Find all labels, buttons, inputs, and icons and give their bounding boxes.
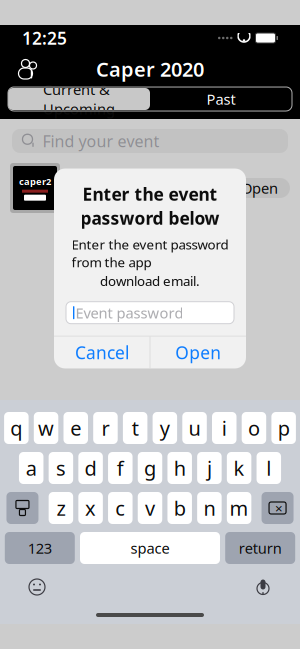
staticText: r	[101, 415, 109, 441]
button[interactable]: l	[256, 452, 281, 484]
button[interactable]: Open	[150, 336, 246, 368]
staticText: n	[203, 495, 215, 521]
button[interactable]: y	[153, 412, 177, 444]
button[interactable]: k	[227, 452, 251, 484]
staticText: download email.	[100, 272, 200, 290]
button[interactable]: f	[108, 452, 132, 484]
staticText: password below	[80, 207, 219, 230]
staticText: w	[38, 415, 54, 441]
staticText: z	[56, 495, 65, 521]
button[interactable]: p	[271, 412, 296, 444]
button[interactable]: q	[4, 412, 29, 444]
staticText: o	[248, 415, 260, 441]
staticText: g	[144, 455, 156, 481]
button[interactable]: x	[78, 492, 103, 524]
staticText: Caper 2020	[96, 56, 204, 82]
button[interactable]: r	[93, 412, 118, 444]
button[interactable]: Find people	[10, 52, 46, 86]
staticText: e	[70, 415, 81, 441]
staticText: Enter the event password from the app	[71, 236, 228, 271]
staticText: ×	[275, 499, 283, 517]
staticText: i	[222, 415, 227, 441]
button[interactable]: 123	[5, 532, 75, 564]
button[interactable]: w	[34, 412, 58, 444]
button[interactable]: t	[123, 412, 147, 444]
button[interactable]: i	[212, 412, 236, 444]
staticText: Open	[175, 341, 221, 364]
staticText: t	[132, 415, 139, 441]
button[interactable]: Emoji	[22, 574, 52, 600]
button[interactable]: s	[49, 452, 73, 484]
button[interactable]: c	[108, 492, 132, 524]
button[interactable]: Current & Upcoming	[8, 88, 150, 110]
button[interactable]: Cancel	[54, 336, 150, 368]
button[interactable]: Shift	[6, 492, 38, 524]
button[interactable]: o	[242, 412, 266, 444]
staticText: Event password	[75, 303, 183, 322]
staticText: u	[188, 415, 200, 441]
button[interactable]: n	[197, 492, 222, 524]
button[interactable]: d	[78, 452, 103, 484]
button[interactable]: j	[197, 452, 222, 484]
staticText: d	[85, 455, 97, 481]
staticText: f	[117, 455, 124, 481]
button[interactable]: return	[225, 532, 295, 564]
staticText: Cancel	[75, 341, 129, 364]
button[interactable]: Past	[150, 88, 292, 110]
staticText: c	[115, 495, 125, 521]
button[interactable]: u	[182, 412, 207, 444]
button[interactable]: Dictation	[248, 574, 278, 600]
button[interactable]: h	[167, 452, 192, 484]
staticText: q	[10, 415, 22, 441]
staticText: y	[160, 415, 170, 441]
button[interactable]: e	[63, 412, 88, 444]
staticText: caper2	[19, 175, 51, 188]
staticText: j	[207, 455, 212, 481]
staticText: Find your event	[42, 130, 159, 152]
staticText: Current & Upcoming	[43, 79, 115, 118]
staticText: k	[234, 455, 245, 481]
button[interactable]: m	[227, 492, 251, 524]
staticText: a	[26, 455, 37, 481]
button[interactable]: Open	[229, 178, 290, 198]
staticText: Open	[241, 178, 278, 198]
staticText: v	[145, 495, 155, 521]
staticText: return	[239, 538, 282, 558]
staticText: m	[230, 495, 249, 521]
staticText: p	[278, 415, 290, 441]
button[interactable]: space	[80, 532, 220, 564]
button[interactable]: v	[138, 492, 162, 524]
button[interactable]: a	[19, 452, 43, 484]
staticText: x	[85, 495, 96, 521]
staticText: Enter the event	[82, 182, 217, 205]
staticText: 12:25	[22, 26, 67, 49]
staticText: 123	[28, 538, 52, 558]
staticText: l	[266, 455, 271, 481]
staticText: b	[174, 495, 186, 521]
button[interactable]: Delete	[261, 492, 293, 524]
button[interactable]: g	[138, 452, 162, 484]
button[interactable]: z	[49, 492, 73, 524]
staticText: Past	[206, 89, 235, 109]
button[interactable]: b	[167, 492, 192, 524]
staticText: space	[130, 538, 169, 558]
staticText: s	[56, 455, 66, 481]
staticText: h	[174, 455, 186, 481]
